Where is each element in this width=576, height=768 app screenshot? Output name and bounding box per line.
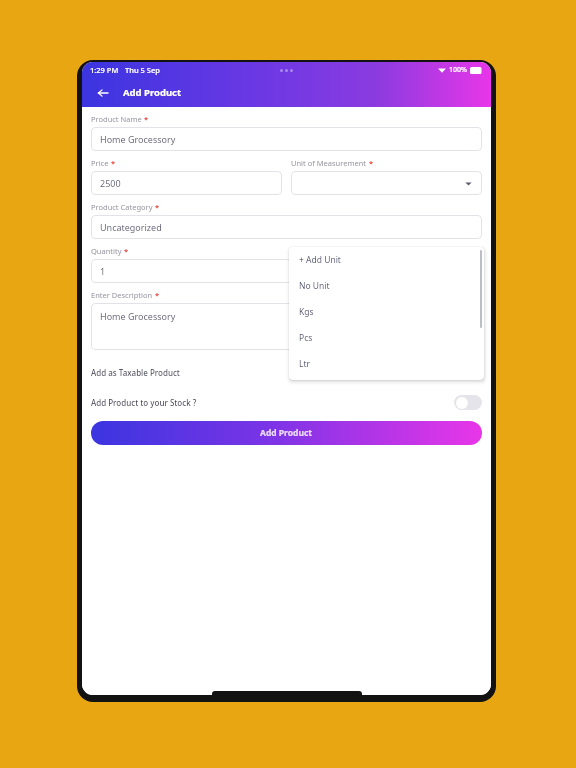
button[interactable]: 1 <box>91 259 482 283</box>
staticText: Add Product <box>260 427 313 439</box>
staticText: Quantity <box>91 246 122 256</box>
staticText: Ltr <box>299 358 311 370</box>
button[interactable]: + Add Unit <box>289 247 484 273</box>
button[interactable]: Ltr <box>289 351 484 377</box>
button[interactable] <box>291 171 482 195</box>
staticText: Pcs <box>299 332 313 344</box>
staticText: * <box>369 158 374 168</box>
staticText: Add Product to your Stock ? <box>91 397 197 408</box>
staticText: Add as Taxable Product <box>91 367 180 378</box>
staticText: Home Grocessory <box>100 310 176 322</box>
button[interactable]: No Unit <box>289 273 484 299</box>
staticText: 100% <box>449 65 467 75</box>
button[interactable]: Add Product to your Stock ? <box>91 387 482 417</box>
staticText: Enter Description <box>91 290 153 300</box>
staticText: Thu 5 Sep <box>125 65 160 75</box>
staticText: * <box>144 114 149 124</box>
staticText: * <box>111 158 116 168</box>
staticText: Unit of Measurement <box>291 158 367 168</box>
button[interactable]: Add Product <box>91 421 482 445</box>
button[interactable]: Add as Taxable Product <box>91 357 482 387</box>
staticText: Product Category <box>91 202 153 212</box>
button[interactable]: 2500 <box>91 171 282 195</box>
staticText: Price <box>91 158 109 168</box>
staticText: 2500 <box>100 177 121 189</box>
staticText: * <box>155 290 160 300</box>
staticText: * <box>155 202 160 212</box>
button[interactable]: Home Grocessory <box>91 127 482 151</box>
staticText: 1:29 PM <box>90 65 119 75</box>
staticText: Add Product <box>123 86 182 99</box>
button[interactable]: Uncategorized <box>91 215 482 239</box>
button[interactable]: Kgs <box>289 299 484 325</box>
staticText: Kgs <box>299 306 314 318</box>
staticText: * <box>124 246 129 256</box>
staticText: Product Name <box>91 114 142 124</box>
staticText: No Unit <box>299 280 330 292</box>
staticText: Home Grocessory <box>100 133 176 145</box>
staticText: 1 <box>100 265 106 277</box>
staticText: + Add Unit <box>299 254 341 266</box>
button[interactable]: Pcs <box>289 325 484 351</box>
button[interactable]: Back <box>93 83 113 103</box>
button[interactable]: Home Grocessory <box>91 303 482 350</box>
staticText: Uncategorized <box>100 221 162 233</box>
